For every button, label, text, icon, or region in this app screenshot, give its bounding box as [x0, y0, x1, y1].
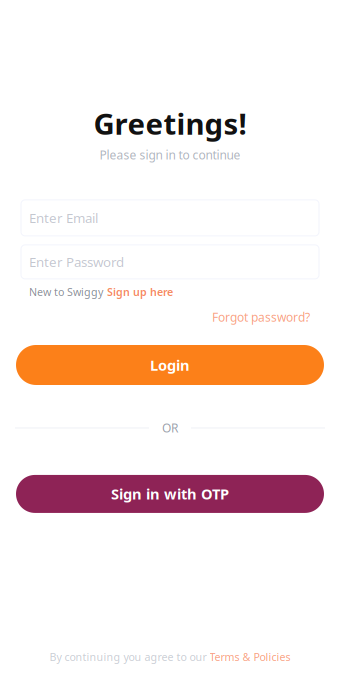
staticText: Enter Email — [29, 209, 98, 227]
staticText: New to Swiggy — [29, 285, 103, 299]
staticText: Greetings! — [93, 104, 246, 143]
button[interactable]: Enter Password — [21, 245, 319, 279]
button[interactable]: Login — [16, 345, 324, 385]
button[interactable]: Terms & Policies — [209, 650, 290, 664]
staticText: By continuing you agree to our — [49, 650, 206, 664]
staticText: OR — [162, 420, 178, 436]
staticText: Please sign in to continue — [99, 147, 240, 163]
staticText: Sign up here — [107, 285, 173, 299]
staticText: Login — [150, 355, 190, 375]
button[interactable]: Sign up here — [107, 285, 173, 299]
button[interactable]: Sign in with OTP — [16, 475, 324, 513]
staticText: Enter Password — [29, 253, 124, 271]
button[interactable]: Forgot password? — [212, 309, 310, 325]
button[interactable]: Enter Email — [21, 200, 319, 236]
staticText: Sign in with OTP — [111, 484, 229, 504]
staticText: Terms & Policies — [209, 650, 290, 664]
staticText: Forgot password? — [212, 309, 310, 325]
